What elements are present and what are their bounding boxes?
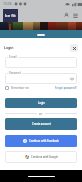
staticText: Continue with Google bbox=[31, 155, 58, 159]
staticText: Continue with Facebook bbox=[29, 139, 59, 143]
button[interactable]: Show password bbox=[69, 76, 74, 81]
button[interactable]: Remember me bbox=[5, 86, 30, 90]
staticText: Login bbox=[38, 101, 45, 105]
staticText: be fit bbox=[5, 13, 16, 19]
button[interactable]: Continue with Facebook bbox=[5, 135, 77, 147]
staticText: E-mail bbox=[9, 55, 17, 59]
staticText: or bbox=[39, 111, 43, 116]
button[interactable]: Forgot password? bbox=[55, 86, 77, 90]
button[interactable]: Continue with Google bbox=[5, 151, 77, 163]
button[interactable]: Close bbox=[70, 44, 78, 52]
staticText: Login bbox=[4, 45, 14, 50]
staticText: Remember me bbox=[11, 86, 30, 90]
button[interactable]: Account bbox=[63, 12, 70, 19]
button[interactable]: Menu bbox=[72, 12, 79, 19]
button[interactable]: Create account bbox=[5, 118, 77, 130]
staticText: 10:36 bbox=[3, 1, 12, 6]
button[interactable] bbox=[5, 57, 77, 68]
staticText: Create account bbox=[32, 122, 51, 126]
button[interactable] bbox=[5, 73, 77, 84]
staticText: Password bbox=[9, 71, 21, 75]
button[interactable]: Login bbox=[5, 98, 77, 108]
